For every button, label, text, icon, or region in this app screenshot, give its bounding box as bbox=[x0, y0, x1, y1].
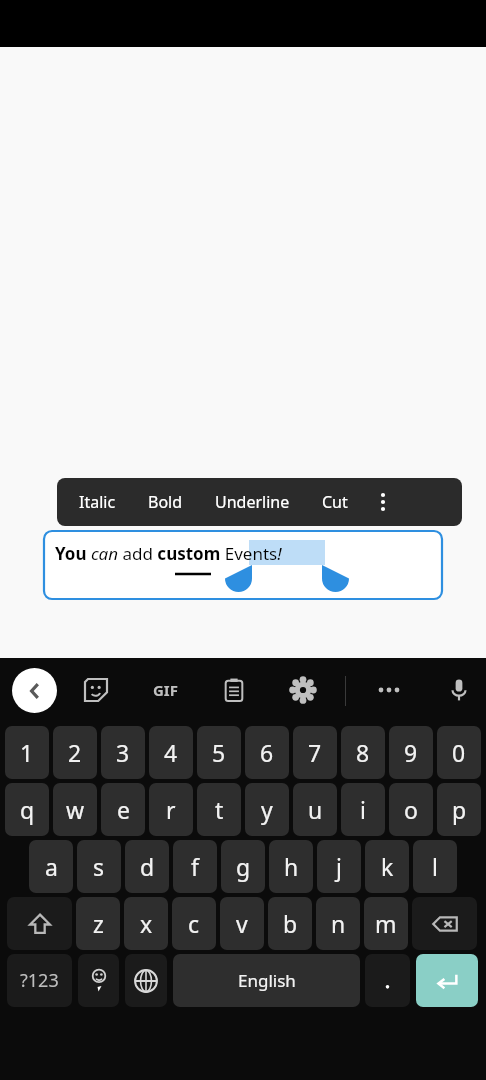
staticText: 9 bbox=[404, 737, 418, 768]
staticText: s bbox=[93, 851, 105, 882]
button[interactable]: More options bbox=[364, 478, 402, 526]
button[interactable]: e bbox=[101, 783, 145, 836]
staticText: 2 bbox=[68, 737, 82, 768]
staticText: GIF bbox=[153, 680, 178, 700]
staticText: b bbox=[283, 908, 298, 939]
staticText: You can add custom Events! bbox=[55, 542, 282, 565]
button[interactable]: Change language bbox=[125, 954, 167, 1007]
button[interactable]: m bbox=[364, 897, 408, 950]
staticText: y bbox=[261, 794, 273, 825]
staticText: v bbox=[236, 908, 248, 939]
button[interactable]: q bbox=[5, 783, 49, 836]
staticText: Underline bbox=[215, 491, 290, 513]
button[interactable]: j bbox=[317, 840, 361, 893]
staticText: c bbox=[188, 908, 200, 939]
button[interactable]: u bbox=[293, 783, 337, 836]
button[interactable]: v bbox=[220, 897, 264, 950]
button[interactable]: Emoji bbox=[78, 954, 119, 1007]
button[interactable]: 2 bbox=[53, 726, 97, 779]
button[interactable]: Voice input bbox=[437, 668, 481, 712]
button[interactable]: l bbox=[413, 840, 457, 893]
staticText: m bbox=[375, 908, 397, 939]
button[interactable]: z bbox=[76, 897, 120, 950]
staticText: j bbox=[336, 851, 342, 882]
button[interactable]: 4 bbox=[149, 726, 193, 779]
staticText: f bbox=[191, 851, 199, 882]
button[interactable]: t bbox=[197, 783, 241, 836]
button[interactable]: w bbox=[53, 783, 97, 836]
staticText: n bbox=[331, 908, 346, 939]
button[interactable]: Enter bbox=[416, 954, 478, 1007]
staticText: g bbox=[236, 851, 251, 882]
button[interactable]: Stickers bbox=[74, 668, 118, 712]
staticText: z bbox=[93, 908, 104, 939]
button[interactable]: b bbox=[268, 897, 312, 950]
staticText: x bbox=[140, 908, 153, 939]
staticText: a bbox=[45, 851, 58, 882]
staticText: q bbox=[20, 794, 35, 825]
staticText: w bbox=[66, 794, 85, 825]
button[interactable]: 5 bbox=[197, 726, 241, 779]
staticText: 5 bbox=[212, 737, 226, 768]
button[interactable]: Period bbox=[365, 954, 410, 1007]
button[interactable]: English bbox=[173, 954, 360, 1007]
button[interactable]: 7 bbox=[293, 726, 337, 779]
staticText: r bbox=[166, 794, 176, 825]
button[interactable]: n bbox=[316, 897, 360, 950]
button[interactable]: ?123 bbox=[7, 954, 72, 1007]
staticText: Italic bbox=[79, 491, 116, 513]
button[interactable]: h bbox=[269, 840, 313, 893]
staticText: 6 bbox=[260, 737, 274, 768]
button[interactable]: r bbox=[149, 783, 193, 836]
button[interactable]: Shift bbox=[7, 897, 72, 950]
button[interactable]: o bbox=[389, 783, 433, 836]
button[interactable]: g bbox=[221, 840, 265, 893]
button[interactable]: Settings bbox=[281, 668, 325, 712]
button[interactable]: Cut bbox=[306, 478, 364, 526]
button[interactable]: 1 bbox=[5, 726, 49, 779]
button[interactable]: p bbox=[437, 783, 481, 836]
button[interactable]: 6 bbox=[245, 726, 289, 779]
button[interactable]: Back bbox=[12, 668, 57, 713]
staticText: u bbox=[308, 794, 323, 825]
staticText: Cut bbox=[322, 491, 348, 513]
staticText: 3 bbox=[116, 737, 130, 768]
button[interactable]: Italic bbox=[63, 478, 132, 526]
button[interactable]: Backspace bbox=[412, 897, 477, 950]
staticText: h bbox=[284, 851, 299, 882]
staticText: 7 bbox=[308, 737, 322, 768]
button[interactable]: More bbox=[367, 668, 411, 712]
staticText: t bbox=[215, 794, 224, 825]
staticText: 4 bbox=[164, 737, 178, 768]
button[interactable]: k bbox=[365, 840, 409, 893]
staticText: k bbox=[381, 851, 394, 882]
button[interactable]: 8 bbox=[341, 726, 385, 779]
button[interactable]: 3 bbox=[101, 726, 145, 779]
staticText: p bbox=[452, 794, 467, 825]
button[interactable]: Clipboard bbox=[212, 668, 256, 712]
staticText: d bbox=[140, 851, 155, 882]
button[interactable]: d bbox=[125, 840, 169, 893]
button[interactable]: f bbox=[173, 840, 217, 893]
staticText: 0 bbox=[452, 737, 466, 768]
staticText: o bbox=[404, 794, 418, 825]
button[interactable]: a bbox=[29, 840, 73, 893]
button[interactable]: 0 bbox=[437, 726, 481, 779]
button[interactable]: y bbox=[245, 783, 289, 836]
button[interactable]: i bbox=[341, 783, 385, 836]
staticText: ?123 bbox=[20, 968, 59, 993]
staticText: Bold bbox=[148, 491, 183, 513]
button[interactable]: Bold bbox=[132, 478, 199, 526]
staticText: e bbox=[117, 794, 130, 825]
button[interactable]: c bbox=[172, 897, 216, 950]
button[interactable]: Underline bbox=[199, 478, 306, 526]
staticText: i bbox=[360, 794, 366, 825]
button[interactable]: GIF bbox=[143, 668, 187, 712]
button[interactable]: 9 bbox=[389, 726, 433, 779]
staticText: l bbox=[432, 851, 438, 882]
button[interactable]: x bbox=[124, 897, 168, 950]
button[interactable]: s bbox=[77, 840, 121, 893]
staticText: 8 bbox=[356, 737, 370, 768]
staticText: English bbox=[238, 969, 296, 992]
staticText: 1 bbox=[20, 737, 34, 768]
